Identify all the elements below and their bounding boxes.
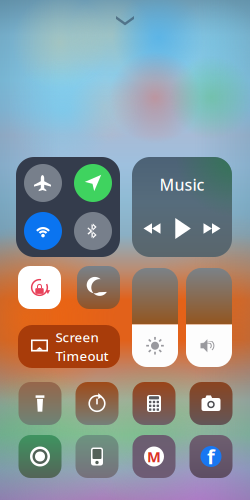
button[interactable]: Fast Forward bbox=[203, 220, 220, 237]
button[interactable]: Bluetooth bbox=[74, 212, 112, 250]
button[interactable]: Screen bbox=[18, 325, 120, 368]
button[interactable]: Brightness bbox=[132, 268, 178, 367]
button[interactable]: Gmail bbox=[132, 435, 175, 478]
staticText: Music bbox=[159, 174, 204, 195]
staticText: f bbox=[207, 443, 215, 470]
staticText: M bbox=[147, 447, 161, 466]
staticText: Screen bbox=[55, 328, 98, 346]
button[interactable]: Wi-Fi bbox=[24, 212, 62, 250]
button[interactable]: Apple TV Remote bbox=[75, 435, 118, 478]
button[interactable]: Screen Record bbox=[18, 435, 61, 478]
button[interactable]: Calculator bbox=[132, 382, 175, 425]
button[interactable]: Airplane Mode bbox=[24, 164, 62, 202]
button[interactable]: Camera bbox=[189, 382, 232, 425]
button[interactable]: Facebook bbox=[189, 435, 232, 478]
button[interactable]: AirDrop bbox=[74, 164, 112, 202]
button[interactable]: Rewind bbox=[143, 220, 160, 237]
staticText: Timeout bbox=[55, 347, 108, 365]
button[interactable]: Volume bbox=[186, 268, 232, 367]
button[interactable]: Play bbox=[171, 218, 192, 239]
button[interactable]: Rotation Lock bbox=[18, 266, 61, 309]
button[interactable]: Timer bbox=[75, 382, 118, 425]
button[interactable]: Do Not Disturb bbox=[77, 266, 120, 309]
button[interactable]: Flashlight bbox=[18, 382, 61, 425]
